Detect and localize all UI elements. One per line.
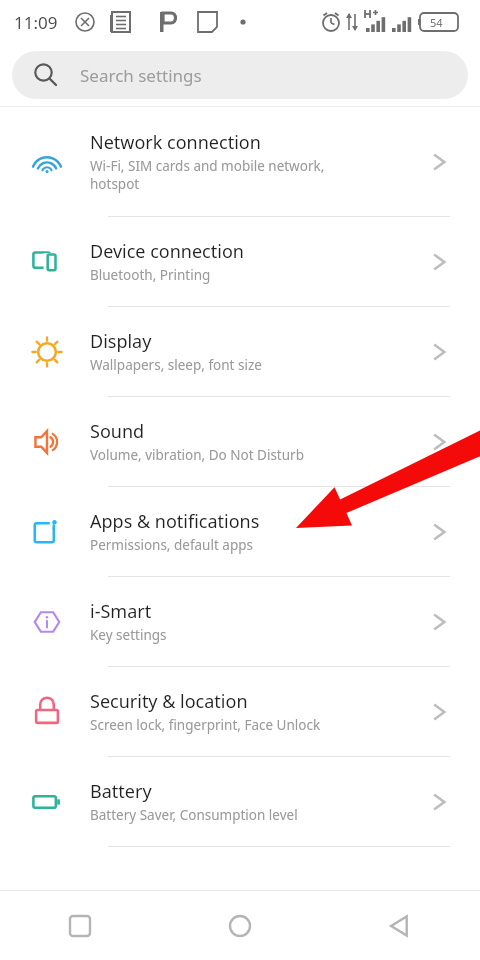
button[interactable]: i-Smart	[0, 577, 480, 667]
staticText: Bluetooth, Printing	[90, 266, 211, 284]
staticText: Apps & notifications	[90, 509, 260, 534]
button[interactable]: Network connection	[0, 107, 480, 217]
staticText: Battery Saver, Consumption level	[90, 806, 298, 824]
staticText: Sound	[90, 419, 145, 444]
staticText: Battery	[90, 779, 152, 804]
staticText: Device connection	[90, 239, 244, 264]
button[interactable]: Security & location	[0, 667, 480, 757]
staticText: Wallpapers, sleep, font size	[90, 356, 262, 374]
staticText: Permissions, default apps	[90, 536, 253, 554]
button[interactable]: Apps & notifications	[0, 487, 480, 577]
staticText: Security & location	[90, 689, 248, 714]
button[interactable]: Search settings	[12, 51, 468, 99]
staticText: Screen lock, fingerprint, Face Unlock	[90, 716, 321, 734]
staticText: Network connection	[90, 130, 261, 155]
button[interactable]: Sound	[0, 397, 480, 487]
button[interactable]: Recent apps	[0, 891, 160, 960]
staticText: 11:09	[14, 11, 58, 34]
staticText: Search settings	[80, 64, 202, 87]
button[interactable]: Battery	[0, 757, 480, 847]
staticText: Wi-Fi, SIM cards and mobile network, hot…	[90, 157, 325, 193]
staticText: 54	[430, 15, 443, 30]
staticText: Key settings	[90, 626, 167, 644]
button[interactable]: Home	[160, 891, 320, 960]
staticText: i-Smart	[90, 599, 152, 624]
staticText: Display	[90, 329, 152, 354]
staticText: Volume, vibration, Do Not Disturb	[90, 446, 304, 464]
button[interactable]: Display	[0, 307, 480, 397]
button[interactable]: Back	[320, 891, 480, 960]
button[interactable]: Device connection	[0, 217, 480, 307]
